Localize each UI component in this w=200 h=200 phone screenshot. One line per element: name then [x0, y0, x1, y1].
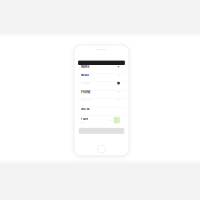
- staticText: PHONE: [81, 90, 90, 94]
- button[interactable]: name@mail.co: [77, 82, 126, 90]
- button[interactable]: PHONE: [77, 90, 126, 99]
- staticText: EMAIL: [81, 73, 89, 77]
- staticText: name@mail.co: [81, 82, 90, 84]
- button[interactable]: EMAIL: [77, 73, 126, 82]
- staticText: Basic: [81, 122, 85, 123]
- staticText: $0: [110, 119, 112, 121]
- button[interactable]: [77, 125, 126, 134]
- button[interactable]: Active plan: [114, 117, 120, 123]
- button[interactable]: NOTES: [77, 107, 126, 116]
- staticText: NAME: [81, 65, 89, 68]
- staticText: NOTES: [81, 107, 89, 111]
- staticText: +1 555 0134: [81, 99, 90, 101]
- button[interactable]: NAME: [77, 65, 126, 73]
- staticText: PLAN: [81, 117, 88, 120]
